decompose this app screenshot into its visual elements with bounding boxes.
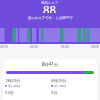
staticText: 08:00 — [91, 45, 100, 49]
staticText: 88 — [43, 2, 57, 13]
staticText: 52分 — [5, 90, 14, 96]
staticText: 00:15 — [0, 45, 9, 49]
staticText: 1時29分 — [5, 78, 21, 84]
staticText: 0分 — [51, 90, 58, 96]
staticText: 05:25 — [61, 45, 70, 49]
staticText: 深い睡眠 — [54, 84, 67, 88]
staticText: 良いスコアです。この調子で — [28, 16, 73, 20]
staticText: 浅い睡眠 — [8, 84, 21, 88]
staticText: 02:50 — [30, 45, 39, 49]
staticText: 8時41分 — [42, 61, 59, 67]
staticText: 6時20分 — [51, 78, 67, 84]
staticText: 睡眠スコア — [41, 1, 59, 5]
